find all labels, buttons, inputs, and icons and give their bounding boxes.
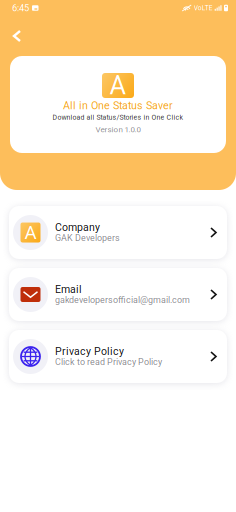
staticText: 6:45 [12, 2, 29, 13]
staticText: Company [55, 221, 100, 234]
button[interactable]: Email [9, 268, 227, 321]
staticText: GAK Developers [55, 233, 120, 243]
staticText: A [109, 71, 126, 100]
staticText: Version 1.0.0 [95, 125, 140, 134]
button[interactable]: Back [5, 24, 29, 48]
staticText: Privacy Policy [55, 345, 124, 358]
staticText: All in One Status Saver [63, 99, 173, 112]
staticText: Download all Status/Stories in One Click [52, 113, 183, 121]
staticText: VoLTE [194, 4, 213, 12]
staticText: A [24, 222, 36, 243]
staticText: Click to read Privacy Policy [55, 357, 162, 367]
button[interactable]: Privacy Policy [9, 330, 227, 383]
staticText: gakdevelopersofficial@gmail.com [55, 295, 190, 305]
staticText: Email [55, 283, 82, 296]
button[interactable]: A [9, 206, 227, 259]
